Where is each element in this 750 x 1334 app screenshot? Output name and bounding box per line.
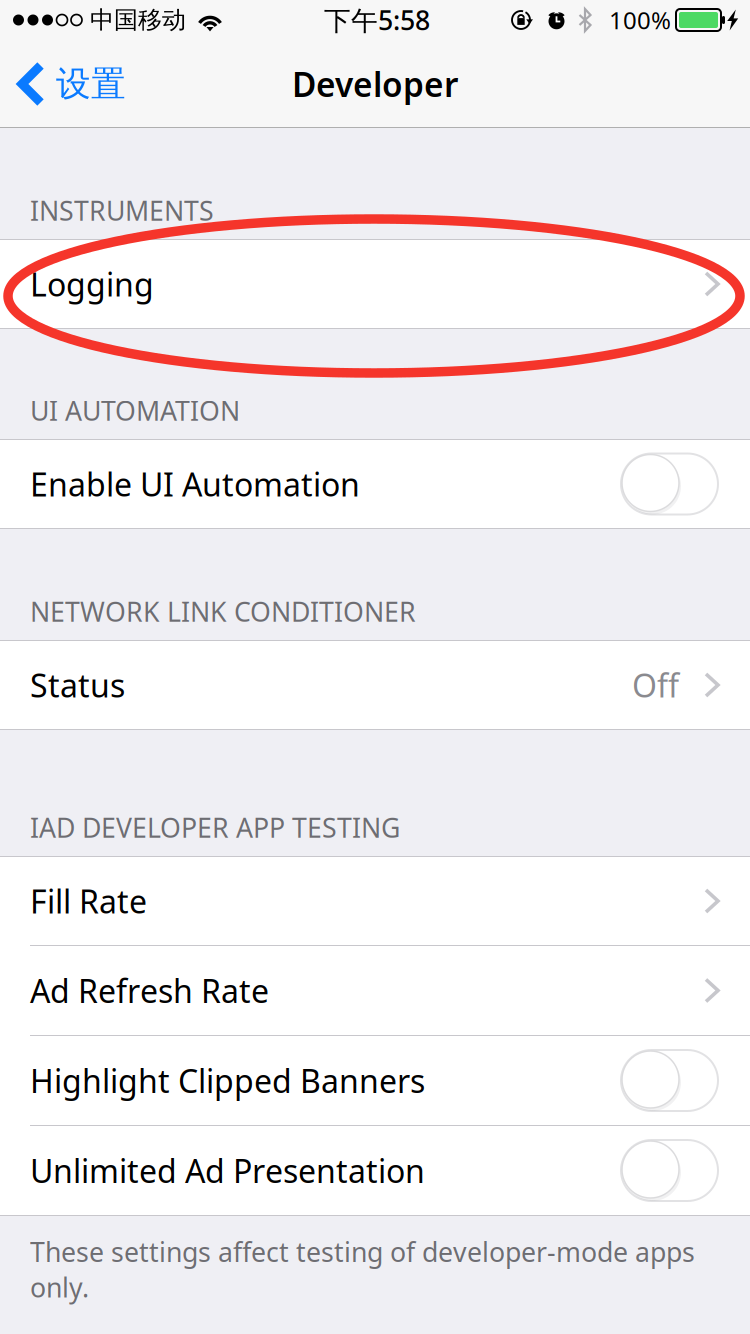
staticText: Enable UI Automation	[30, 463, 360, 505]
button[interactable]: Fill Rate	[0, 857, 750, 945]
staticText: Highlight Clipped Banners	[30, 1059, 425, 1102]
staticText: IAD DEVELOPER APP TESTING	[30, 810, 400, 845]
button[interactable]: Enable UI Automation	[0, 440, 750, 528]
button[interactable]: Highlight Clipped Banners	[0, 1036, 750, 1125]
staticText: Developer	[292, 62, 458, 106]
staticText: These settings affect testing of develop…	[30, 1234, 695, 1305]
staticText: 下午5:58	[324, 2, 430, 38]
staticText: Fill Rate	[30, 880, 147, 922]
staticText: UI AUTOMATION	[30, 393, 240, 428]
button[interactable]: Logging	[0, 240, 750, 328]
button[interactable]: 设置	[0, 40, 138, 128]
button[interactable]: Unlimited Ad Presentation	[0, 1126, 750, 1215]
button[interactable]: Status	[0, 641, 750, 729]
staticText: 中国移动	[90, 5, 186, 35]
staticText: Ad Refresh Rate	[30, 969, 269, 1012]
staticText: INSTRUMENTS	[30, 193, 214, 228]
staticText: Off	[632, 664, 679, 706]
staticText: Status	[30, 664, 125, 706]
staticText: 设置	[56, 63, 126, 105]
button[interactable]: Ad Refresh Rate	[0, 946, 750, 1035]
staticText: Logging	[30, 263, 154, 305]
staticText: 100%	[609, 4, 671, 36]
staticText: Unlimited Ad Presentation	[30, 1149, 425, 1192]
staticText: NETWORK LINK CONDITIONER	[30, 594, 416, 629]
